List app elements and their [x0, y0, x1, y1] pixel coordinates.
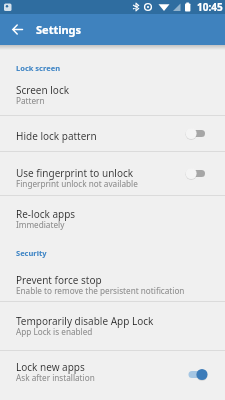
button[interactable]: Use fingerprint to unlock [0, 152, 225, 195]
staticText: App Lock is enabled [16, 326, 93, 337]
staticText: 10:45 [197, 0, 223, 14]
staticText: Ask after installation [16, 372, 95, 383]
staticText: Fingerprint unlock not available [16, 178, 138, 189]
button[interactable]: Re-lock apps [0, 196, 225, 236]
staticText: Use fingerprint to unlock [16, 166, 134, 180]
staticText: Re-lock apps [16, 207, 76, 221]
button[interactable]: Hide lock pattern [0, 116, 225, 151]
staticText: Enable to remove the persistent notifica… [16, 285, 185, 296]
staticText: Hide lock pattern [16, 129, 97, 143]
staticText: Lock screen [16, 63, 61, 73]
staticText: Immediately [16, 219, 65, 230]
staticText: Prevent force stop [16, 273, 102, 287]
button[interactable]: Temporarily disable App Lock [0, 302, 225, 350]
button[interactable]: Prevent force stop [0, 264, 225, 301]
button[interactable]: Lock new apps [0, 351, 225, 398]
staticText: Lock new apps [16, 360, 85, 374]
button[interactable]: Screen lock [0, 79, 225, 115]
staticText: Settings [36, 22, 82, 37]
staticText: Security [16, 248, 47, 258]
staticText: Screen lock [16, 83, 70, 97]
staticText: Pattern [16, 95, 45, 106]
staticText: Temporarily disable App Lock [16, 314, 154, 328]
button[interactable] [0, 14, 34, 45]
